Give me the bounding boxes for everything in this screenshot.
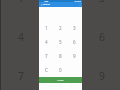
button[interactable]: Weiter bbox=[39, 77, 82, 83]
button[interactable]: 8 bbox=[53, 49, 67, 63]
staticText: 5 bbox=[59, 30, 66, 44]
button[interactable]: 9 bbox=[67, 49, 81, 63]
staticText: 0 bbox=[59, 67, 62, 73]
staticText: 9 bbox=[99, 69, 106, 83]
button[interactable]: 5 bbox=[53, 35, 67, 49]
staticText: 2 bbox=[59, 25, 62, 31]
staticText: 6 bbox=[73, 39, 76, 45]
staticText: 5 bbox=[59, 39, 62, 45]
button[interactable]: More options bbox=[78, 3, 81, 6]
button[interactable]: 4 bbox=[39, 35, 53, 49]
staticText: C bbox=[45, 67, 48, 73]
staticText: 9 bbox=[73, 53, 76, 59]
staticText: 8 bbox=[59, 53, 62, 59]
staticText: 6 bbox=[99, 30, 106, 44]
button[interactable]: 2 bbox=[53, 21, 67, 35]
button[interactable]: 1 bbox=[1, 0, 42, 17]
staticText: Betrag bbox=[43, 3, 51, 6]
staticText: 3 bbox=[73, 25, 76, 31]
button[interactable]: 8 bbox=[42, 56, 82, 90]
button[interactable]: C bbox=[39, 63, 53, 77]
button[interactable]: Back bbox=[40, 3, 43, 6]
staticText: 3 bbox=[99, 0, 106, 5]
button[interactable]: 6 bbox=[67, 35, 81, 49]
button[interactable]: 4 bbox=[1, 17, 42, 56]
button[interactable]: 7 bbox=[39, 49, 53, 63]
staticText: 1 bbox=[18, 0, 25, 5]
staticText: 7 bbox=[45, 53, 48, 59]
staticText: 1 bbox=[45, 25, 48, 31]
staticText: 4 bbox=[45, 39, 48, 45]
button[interactable]: 1 bbox=[39, 21, 53, 35]
staticText: Weiter bbox=[57, 79, 64, 82]
staticText: 7 bbox=[18, 69, 25, 83]
button[interactable]: 2 bbox=[42, 0, 82, 17]
staticText: Mobil bbox=[44, 0, 49, 2]
staticText: 8 bbox=[59, 69, 66, 83]
button[interactable]: 0 bbox=[53, 63, 67, 77]
staticText: 4 bbox=[18, 30, 25, 44]
button[interactable]: 5 bbox=[42, 17, 82, 56]
staticText: 12:30 ▮ ▮ bbox=[74, 0, 81, 2]
staticText: 2 bbox=[59, 0, 66, 5]
button[interactable]: 3 bbox=[67, 21, 81, 35]
button[interactable]: 7 bbox=[1, 56, 42, 90]
